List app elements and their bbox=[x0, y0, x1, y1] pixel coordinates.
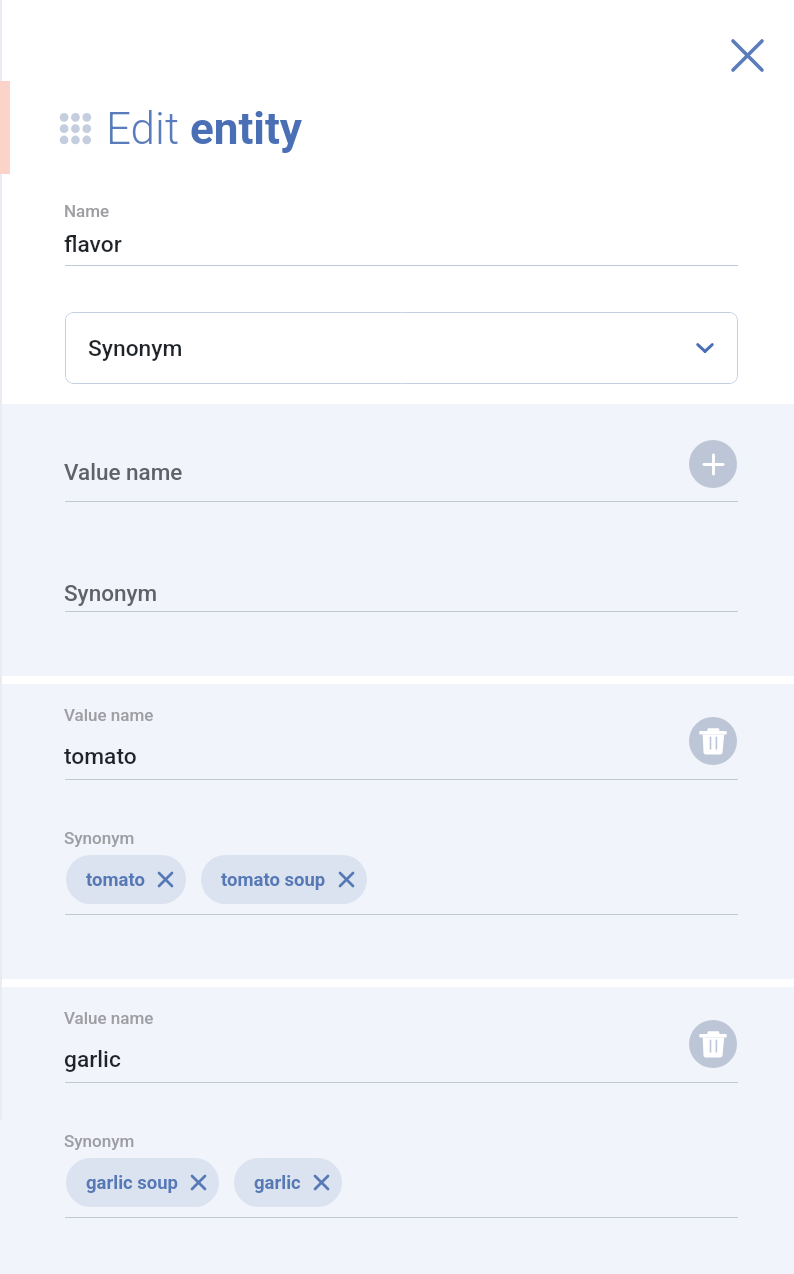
button[interactable]: Delete value bbox=[689, 1020, 737, 1068]
button[interactable]: Add value bbox=[689, 440, 737, 488]
staticText: Synonym bbox=[64, 1131, 135, 1151]
staticText: Name bbox=[64, 201, 110, 221]
staticText: tomato soup bbox=[221, 869, 326, 891]
button[interactable]: Delete value bbox=[689, 717, 737, 765]
button[interactable]: tomato soup bbox=[201, 855, 367, 904]
staticText: Value name bbox=[64, 1008, 154, 1028]
staticText: flavor bbox=[64, 231, 122, 258]
button[interactable]: Close bbox=[715, 23, 779, 87]
button[interactable]: garlic soup bbox=[66, 1158, 219, 1207]
staticText: garlic bbox=[64, 1046, 121, 1073]
button[interactable]: garlic bbox=[234, 1158, 342, 1207]
staticText: garlic bbox=[254, 1172, 301, 1194]
staticText: Value name bbox=[64, 705, 154, 725]
staticText: Synonym bbox=[88, 335, 183, 362]
button[interactable]: Synonym bbox=[65, 312, 738, 384]
staticText: Synonym bbox=[64, 580, 158, 606]
staticText: Edit bbox=[106, 103, 190, 155]
staticText: tomato bbox=[86, 869, 145, 891]
staticText: tomato bbox=[64, 743, 137, 770]
staticText: garlic soup bbox=[86, 1172, 178, 1194]
staticText: Synonym bbox=[64, 828, 135, 848]
staticText: Value name bbox=[64, 459, 183, 485]
button[interactable]: tomato bbox=[66, 855, 186, 904]
staticText: entity bbox=[190, 103, 302, 155]
